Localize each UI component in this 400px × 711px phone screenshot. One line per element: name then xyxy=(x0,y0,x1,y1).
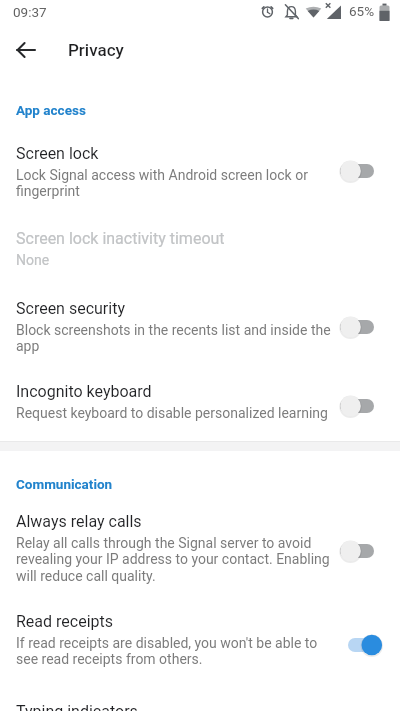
staticText: 09:37 xyxy=(13,4,47,20)
staticText: Typing indicators xyxy=(16,702,138,711)
button[interactable]: Incognito keyboard xyxy=(16,382,400,421)
staticText: Screen security xyxy=(16,299,125,318)
staticText: App access xyxy=(16,102,86,118)
button[interactable] xyxy=(10,34,42,66)
staticText: Read receipts xyxy=(16,612,114,631)
button[interactable] xyxy=(340,392,400,420)
button[interactable] xyxy=(340,313,400,341)
button[interactable] xyxy=(340,157,400,185)
staticText: Lock Signal access with Android screen l… xyxy=(16,167,308,199)
button[interactable]: Typing indicators xyxy=(16,702,400,711)
button[interactable]: Screen lock xyxy=(16,144,400,199)
staticText: Privacy xyxy=(68,40,124,60)
staticText: None xyxy=(16,252,50,268)
staticText: Screen lock xyxy=(16,144,99,163)
staticText: Request keyboard to disable personalized… xyxy=(16,405,328,421)
staticText: Communication xyxy=(16,476,113,492)
button[interactable] xyxy=(340,537,400,565)
button[interactable] xyxy=(340,631,400,659)
staticText: 65% xyxy=(349,3,375,19)
button[interactable]: Screen security xyxy=(16,299,400,354)
staticText: Screen lock inactivity timeout xyxy=(16,229,225,248)
staticText: Always relay calls xyxy=(16,512,142,531)
staticText: Relay all calls through the Signal serve… xyxy=(16,535,330,584)
staticText: Block screenshots in the recents list an… xyxy=(16,322,331,354)
button[interactable]: Always relay calls xyxy=(16,512,400,584)
staticText: Incognito keyboard xyxy=(16,382,152,401)
staticText: If read receipts are disabled, you won't… xyxy=(16,635,318,667)
button[interactable]: Read receipts xyxy=(16,612,400,667)
button[interactable]: Screen lock inactivity timeout xyxy=(16,229,400,268)
